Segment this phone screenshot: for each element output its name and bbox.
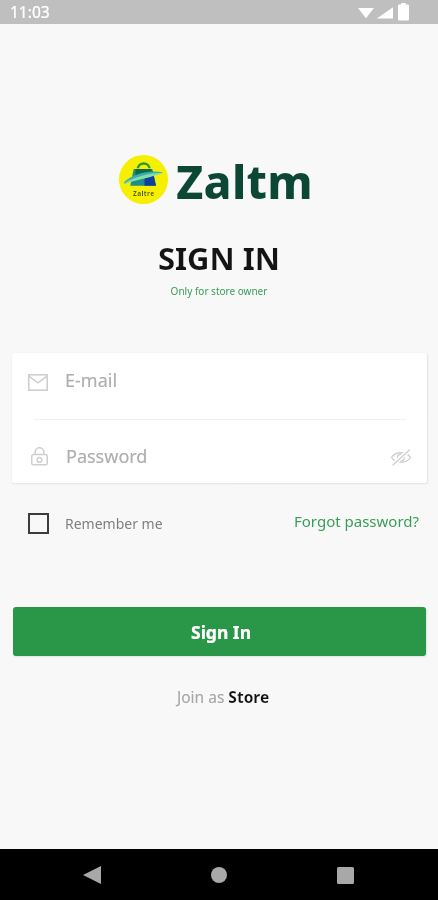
staticText: Join as Store xyxy=(177,686,270,707)
button[interactable]: Remember me xyxy=(0,513,163,534)
button[interactable]: Password xyxy=(12,425,427,483)
staticText: Zaltre xyxy=(133,189,155,198)
staticText: Forgot password? xyxy=(294,511,420,531)
staticText: Only for store owner xyxy=(0,284,438,298)
staticText: 11:03 xyxy=(10,1,50,22)
staticText: E-mail xyxy=(65,368,118,393)
staticText: SIGN IN xyxy=(0,237,438,279)
button[interactable]: Forgot password? xyxy=(294,511,438,531)
button[interactable]: Home xyxy=(195,851,243,899)
staticText: Password xyxy=(66,444,148,469)
staticText: Remember me xyxy=(65,514,163,533)
button[interactable]: Show password xyxy=(387,444,411,468)
staticText: Zaltm xyxy=(176,150,313,213)
button[interactable]: Back xyxy=(68,851,116,899)
button[interactable]: E-mail xyxy=(12,353,427,407)
button[interactable]: Sign In xyxy=(13,607,426,656)
staticText: Sign In xyxy=(191,620,252,644)
button[interactable]: Join as Store xyxy=(177,686,270,707)
button[interactable]: Recents xyxy=(321,851,369,899)
